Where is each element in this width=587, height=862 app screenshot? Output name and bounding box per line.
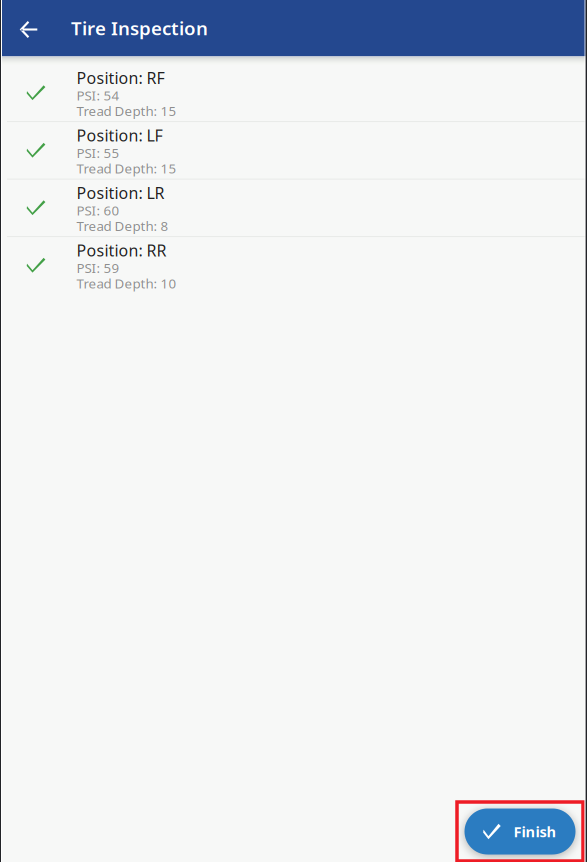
staticText: PSI: 54 [76,86,119,104]
button[interactable]: Position: LR [0,180,587,236]
staticText: Tread Depth: 15 [76,160,176,177]
staticText: PSI: 59 [76,259,119,277]
staticText: Position: RF [76,67,164,88]
staticText: Position: LR [76,182,164,203]
button[interactable]: Position: RR [0,237,587,294]
button[interactable]: Finish [464,808,575,854]
staticText: Finish [513,822,556,841]
button[interactable]: Back [0,0,57,56]
staticText: Tread Depth: 8 [76,217,168,235]
staticText: Tire Inspection [71,16,208,40]
staticText: Position: LF [76,125,162,146]
button[interactable]: Position: RF [0,65,587,121]
staticText: Tread Depth: 15 [76,102,176,120]
staticText: Tread Depth: 10 [76,275,176,292]
staticText: PSI: 60 [76,201,119,219]
button[interactable]: Position: LF [0,122,587,179]
staticText: Position: RR [76,240,166,261]
staticText: PSI: 55 [76,144,119,162]
